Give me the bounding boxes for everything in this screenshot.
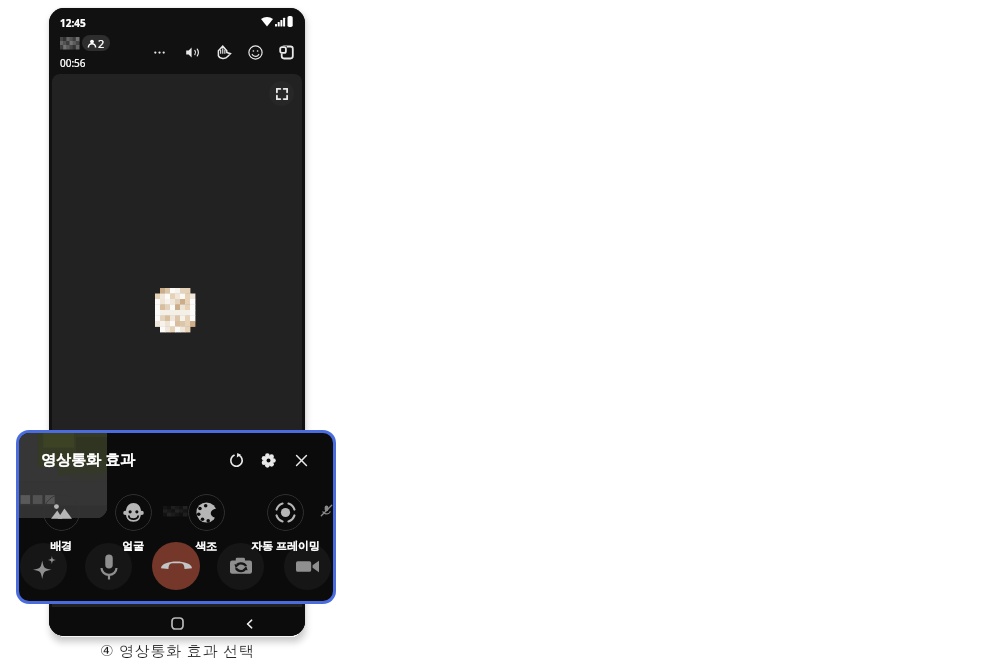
button[interactable]: Raise hand: [212, 41, 234, 63]
button[interactable]: Close: [290, 449, 312, 471]
staticText: ④ 영상통화 효과 선택: [100, 640, 255, 660]
button[interactable]: Full screen: [269, 81, 294, 106]
button[interactable]: End call: [152, 542, 200, 590]
button[interactable]: Home: [168, 614, 187, 633]
button[interactable]: Effects: [20, 543, 67, 590]
staticText: 얼굴: [122, 539, 144, 553]
staticText: 2: [98, 36, 105, 51]
button[interactable]: Settings: [257, 449, 279, 471]
button[interactable]: Video: [284, 543, 331, 590]
staticText: 영상통화 효과: [41, 449, 135, 469]
button[interactable]: Speaker: [181, 41, 203, 63]
staticText: 색조: [195, 539, 217, 553]
button[interactable]: Switch camera: [217, 543, 264, 590]
staticText: 배경: [50, 539, 72, 553]
button[interactable]: 색조: [175, 491, 237, 554]
button[interactable]: 자동 프레이밍: [254, 491, 316, 554]
staticText: 12:45: [60, 16, 86, 30]
button[interactable]: Reset: [225, 449, 247, 471]
button[interactable]: 배경: [30, 491, 92, 554]
button[interactable]: 얼굴: [102, 491, 164, 554]
button[interactable]: Mute: [85, 543, 132, 590]
button[interactable]: More: [148, 41, 170, 63]
staticText: 00:56: [60, 56, 86, 70]
button[interactable]: Participants: [87, 35, 105, 51]
button[interactable]: Effects: [244, 41, 266, 63]
button[interactable]: Picture in picture: [275, 41, 297, 63]
button[interactable]: Back: [240, 614, 259, 633]
staticText: 자동 프레이밍: [251, 538, 320, 553]
